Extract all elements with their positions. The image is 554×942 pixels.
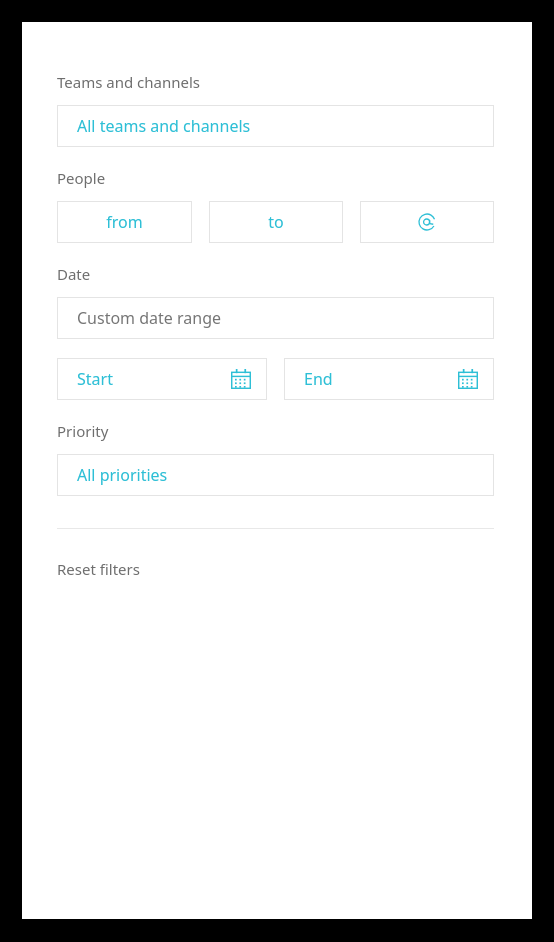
button[interactable]: Reset filters — [57, 557, 140, 581]
button[interactable]: from — [57, 201, 192, 243]
staticText: Custom date range — [77, 307, 222, 329]
staticText: Teams and channels — [57, 72, 201, 92]
staticText: to — [209, 211, 343, 233]
staticText: People — [57, 168, 106, 188]
staticText: All priorities — [77, 464, 168, 486]
staticText: from — [57, 211, 192, 233]
staticText: End — [304, 368, 458, 390]
staticText: Reset filters — [57, 559, 140, 579]
button[interactable]: All priorities — [57, 454, 494, 496]
button[interactable]: End date — [284, 358, 494, 400]
staticText: Date — [57, 264, 91, 284]
button[interactable]: to — [209, 201, 343, 243]
button[interactable]: Start date — [57, 358, 267, 400]
staticText: Start — [77, 368, 231, 390]
staticText: Priority — [57, 421, 109, 441]
button[interactable]: All teams and channels — [57, 105, 494, 147]
button[interactable]: Custom date range — [57, 297, 494, 339]
staticText: All teams and channels — [77, 115, 251, 137]
button[interactable]: Mentions — [360, 201, 494, 243]
